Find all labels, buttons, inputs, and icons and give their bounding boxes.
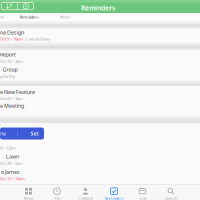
staticText: Reminders <box>81 3 115 12</box>
staticText: Oct 12 • 10am <box>0 176 25 181</box>
button[interactable]: Contacts <box>71 186 100 200</box>
staticText: ne <box>0 130 6 137</box>
staticText: Lists <box>138 195 146 200</box>
staticText: Oct 28 • 5pm <box>0 160 23 166</box>
staticText: Consult Diana <box>26 36 50 42</box>
staticText: Oct 22 • 3pm <box>0 58 23 64</box>
staticText: ne Design <box>0 29 24 36</box>
button[interactable]: Reminders <box>10 13 48 21</box>
staticText: Set <box>30 130 38 137</box>
button[interactable]: Lawn <box>0 153 90 166</box>
staticText: e Meeting <box>0 102 24 109</box>
button[interactable]: Work <box>48 13 82 21</box>
staticText: g Facility <box>0 73 15 79</box>
staticText: Lawn <box>6 153 19 160</box>
staticText: Oct 9 • 10am <box>0 36 23 42</box>
staticText: Oct 23 • 3pm <box>0 96 23 101</box>
staticText: Report <box>0 51 16 58</box>
staticText: Group <box>2 66 17 73</box>
button[interactable]: o James <box>0 168 90 181</box>
staticText: e New Feature <box>0 88 35 95</box>
staticText: Day <box>53 195 60 200</box>
button[interactable]: e Meeting <box>0 102 90 110</box>
button[interactable]: 8 • 12pm <box>0 145 90 150</box>
staticText: Work <box>60 14 70 20</box>
button[interactable]: Sort order <box>2 3 17 10</box>
button[interactable]: Reminders <box>100 186 128 200</box>
staticText: ne <box>0 14 4 20</box>
staticText: News <box>23 195 33 200</box>
button[interactable]: Day <box>43 186 71 200</box>
button[interactable]: Lists <box>128 186 157 200</box>
button[interactable]: ne <box>0 13 10 21</box>
staticText: Reminders <box>19 14 38 20</box>
button[interactable]: e New Feature <box>0 88 90 101</box>
staticText: Search <box>165 195 177 200</box>
staticText: Reminders <box>104 195 123 200</box>
button[interactable]: Report <box>0 51 90 64</box>
button[interactable]: Search <box>157 186 185 200</box>
button[interactable]: Group <box>0 66 90 79</box>
button[interactable]: Scheduled <box>18 3 34 10</box>
button[interactable]: Set <box>28 127 40 139</box>
staticText: Contacts <box>78 195 93 200</box>
button[interactable]: ne Design <box>0 29 90 42</box>
staticText: o James <box>1 168 20 176</box>
staticText: 8 • 12pm <box>0 145 16 150</box>
button[interactable]: News <box>14 186 43 200</box>
button[interactable]: ne <box>0 127 8 139</box>
